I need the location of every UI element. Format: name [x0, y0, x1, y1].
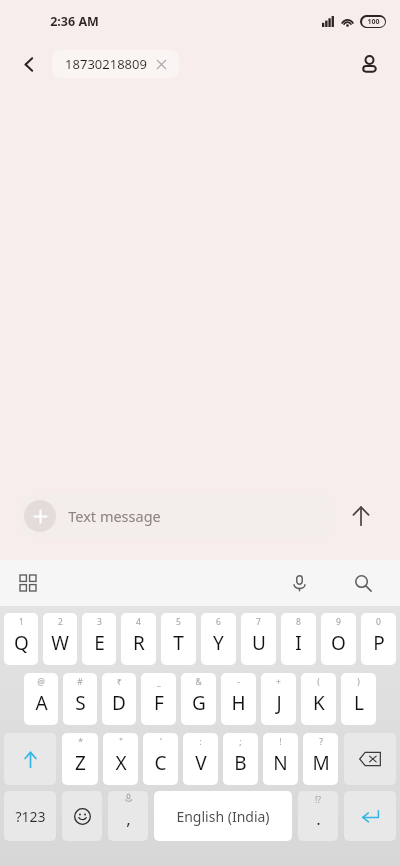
- staticText: J: [276, 690, 282, 716]
- button[interactable]: !?: [298, 791, 338, 841]
- staticText: ?123: [15, 807, 46, 826]
- staticText: 6: [216, 616, 221, 628]
- button[interactable]: 4: [121, 613, 156, 665]
- staticText: 4: [136, 616, 141, 628]
- staticText: !: [279, 736, 282, 748]
- button[interactable]: +: [261, 673, 296, 725]
- staticText: W: [51, 630, 69, 656]
- staticText: C: [154, 750, 167, 776]
- button[interactable]: :: [183, 733, 218, 785]
- staticText: :: [199, 736, 202, 748]
- button[interactable]: @: [24, 673, 58, 725]
- button[interactable]: Back: [12, 47, 46, 81]
- button[interactable]: 6: [201, 613, 236, 665]
- button[interactable]: 9: [321, 613, 356, 665]
- staticText: P: [373, 630, 385, 656]
- button[interactable]: 18730218809: [52, 50, 179, 78]
- button[interactable]: _: [141, 673, 176, 725]
- button[interactable]: Emoji: [62, 791, 102, 841]
- staticText: ,: [126, 807, 131, 830]
- staticText: U: [252, 630, 266, 656]
- staticText: @: [37, 676, 45, 688]
- button[interactable]: (: [301, 673, 336, 725]
- button[interactable]: 1: [4, 613, 38, 665]
- button[interactable]: -: [221, 673, 256, 725]
- staticText: 7: [256, 616, 261, 628]
- staticText: +: [276, 676, 281, 688]
- staticText: Y: [213, 630, 224, 656]
- button[interactable]: Add attachment: [18, 494, 336, 538]
- button[interactable]: 2: [43, 613, 77, 665]
- button[interactable]: ): [341, 673, 376, 725]
- button[interactable]: 8: [281, 613, 316, 665]
- button[interactable]: 7: [241, 613, 276, 665]
- staticText: -: [237, 676, 240, 688]
- staticText: L: [354, 690, 364, 716]
- button[interactable]: Backspace: [344, 733, 396, 785]
- staticText: #: [77, 676, 83, 688]
- button[interactable]: Enter: [344, 791, 396, 841]
- button[interactable]: Add attachment: [24, 500, 56, 532]
- staticText: 3: [97, 616, 102, 628]
- staticText: 0: [376, 616, 381, 628]
- staticText: X: [115, 750, 127, 776]
- button[interactable]: English (India): [154, 791, 292, 841]
- staticText: Q: [14, 630, 29, 656]
- staticText: 18730218809: [65, 55, 147, 73]
- staticText: M: [312, 750, 330, 776]
- staticText: H: [231, 690, 246, 716]
- staticText: D: [112, 690, 126, 716]
- staticText: A: [35, 690, 48, 716]
- staticText: !?: [315, 794, 321, 806]
- button[interactable]: ?: [303, 733, 338, 785]
- staticText: ': [160, 736, 162, 748]
- button[interactable]: 0: [361, 613, 396, 665]
- staticText: 2:36 AM: [50, 13, 99, 30]
- staticText: 100: [367, 17, 380, 27]
- staticText: ;: [239, 736, 242, 748]
- button[interactable]: Search: [344, 564, 382, 602]
- staticText: 2: [58, 616, 63, 628]
- button[interactable]: Shift: [4, 733, 56, 785]
- staticText: ₹: [117, 676, 122, 688]
- staticText: English (India): [176, 807, 270, 826]
- button[interactable]: #: [63, 673, 97, 725]
- button[interactable]: 5: [161, 613, 196, 665]
- button[interactable]: ,: [108, 791, 148, 841]
- button[interactable]: Contact details: [350, 45, 388, 83]
- button[interactable]: ;: [223, 733, 258, 785]
- button[interactable]: Keyboard menu: [10, 565, 46, 601]
- button[interactable]: ': [143, 733, 178, 785]
- staticText: F: [154, 690, 164, 716]
- button[interactable]: *: [62, 733, 98, 785]
- staticText: S: [75, 690, 86, 716]
- staticText: (: [317, 676, 320, 688]
- staticText: 5: [176, 616, 181, 628]
- staticText: _: [157, 676, 161, 688]
- button[interactable]: ?123: [4, 791, 56, 841]
- button[interactable]: Send: [336, 493, 386, 539]
- staticText: G: [192, 690, 206, 716]
- staticText: ?: [319, 736, 323, 748]
- staticText: I: [295, 630, 302, 656]
- staticText: R: [133, 630, 145, 656]
- staticText: 8: [296, 616, 301, 628]
- staticText: &: [195, 676, 202, 688]
- staticText: T: [173, 630, 184, 656]
- staticText: E: [94, 630, 105, 656]
- staticText: 9: [336, 616, 341, 628]
- staticText: Text message: [68, 506, 161, 526]
- staticText: Z: [75, 750, 86, 776]
- button[interactable]: Voice input: [280, 564, 318, 602]
- button[interactable]: !: [263, 733, 298, 785]
- staticText: ": [119, 736, 123, 748]
- button[interactable]: 3: [82, 613, 116, 665]
- staticText: .: [316, 807, 321, 830]
- staticText: B: [234, 750, 247, 776]
- staticText: N: [273, 750, 288, 776]
- staticText: ): [357, 676, 360, 688]
- button[interactable]: ₹: [102, 673, 136, 725]
- button[interactable]: ": [103, 733, 138, 785]
- staticText: K: [313, 690, 325, 716]
- button[interactable]: &: [181, 673, 216, 725]
